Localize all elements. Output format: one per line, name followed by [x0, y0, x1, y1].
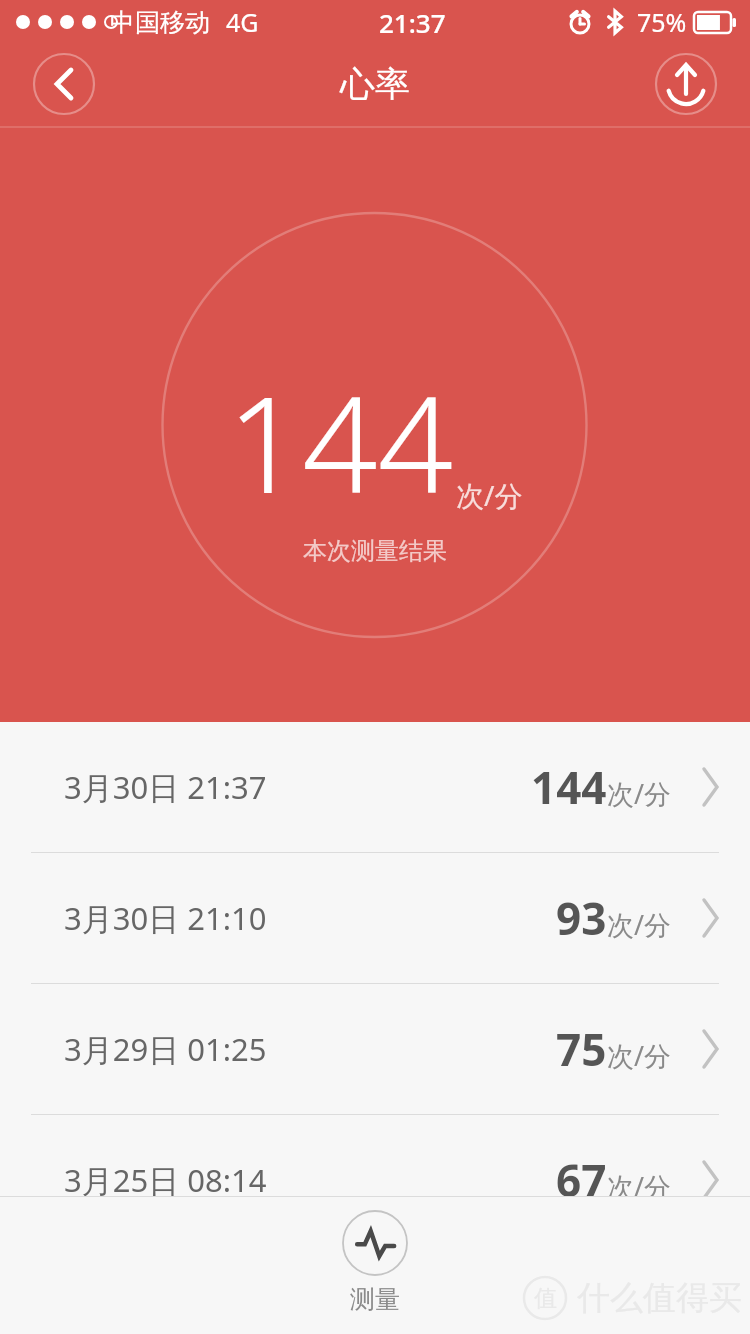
staticText: 值: [534, 1284, 557, 1313]
staticText: 次/分: [607, 1168, 672, 1205]
staticText: 144: [227, 352, 454, 532]
button[interactable]: 3月25日 08:14: [0, 1115, 750, 1245]
other: Measure: [342, 1210, 408, 1276]
staticText: 次/分: [607, 775, 672, 812]
staticText: 本次测量结果: [303, 536, 447, 566]
staticText: 144: [531, 757, 607, 817]
button[interactable]: Measure: [342, 1210, 408, 1315]
staticText: 75: [556, 1019, 607, 1079]
button[interactable]: Back: [33, 53, 95, 115]
staticText: 93: [556, 888, 607, 948]
button[interactable]: 3月29日 01:25: [0, 984, 750, 1114]
staticText: 次/分: [456, 476, 523, 514]
staticText: 21:37: [379, 5, 446, 40]
staticText: 3月25日 08:14: [64, 1159, 267, 1201]
staticText: 什么值得买: [577, 1277, 742, 1319]
staticText: 3月30日 21:37: [64, 766, 267, 808]
staticText: 次/分: [607, 1037, 672, 1074]
staticText: 中国移动: [110, 7, 210, 38]
button[interactable]: 3月30日 21:37: [0, 722, 750, 852]
button[interactable]: Share: [655, 53, 717, 115]
button[interactable]: 3月30日 21:10: [0, 853, 750, 983]
staticText: 心率: [340, 62, 410, 106]
staticText: 67: [556, 1150, 607, 1210]
staticText: 3月29日 01:25: [64, 1028, 267, 1070]
staticText: 4G: [226, 5, 259, 39]
staticText: 次/分: [607, 906, 672, 943]
staticText: 3月30日 21:10: [64, 897, 267, 939]
staticText: 测量: [350, 1284, 400, 1315]
staticText: 75%: [637, 5, 687, 39]
